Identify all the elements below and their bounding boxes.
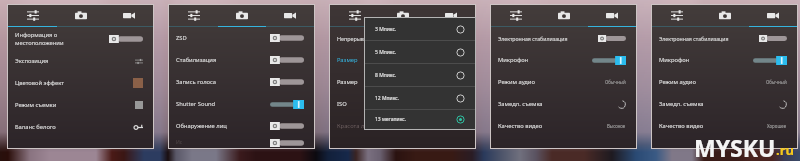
staticText: Shutter Sound — [176, 100, 216, 108]
staticText: MYSKU — [694, 132, 776, 161]
staticText: 8 Мпикс. — [375, 72, 397, 79]
button[interactable]: Качество видео — [491, 115, 636, 137]
button[interactable]: Video — [749, 5, 797, 27]
staticText: Информация о местоположении — [15, 31, 64, 46]
button[interactable]: Обнаружение лиц — [169, 115, 314, 137]
button[interactable]: Режим съемки — [8, 94, 153, 116]
staticText: ZSD — [176, 34, 187, 42]
staticText: Размер — [337, 78, 358, 86]
staticText: Режим съемки — [15, 101, 57, 109]
button[interactable]: Camera — [701, 5, 749, 27]
staticText: Ис — [176, 139, 183, 146]
staticText: Качество видео — [498, 122, 543, 130]
staticText: ISO — [337, 100, 347, 108]
button[interactable]: Camera — [540, 5, 588, 27]
staticText: Обычный — [766, 79, 787, 85]
button[interactable]: Camera — [218, 5, 266, 27]
staticText: По умолчанию — [433, 123, 465, 129]
staticText: 12 Мпикс. — [375, 95, 400, 102]
button[interactable]: ISO — [330, 93, 475, 115]
staticText: Экспозиция — [15, 57, 49, 65]
button[interactable]: Settings — [652, 5, 701, 27]
button[interactable]: 5 Мпикс. — [365, 41, 475, 63]
button[interactable]: 3 Мпикс. — [365, 18, 475, 40]
staticText: Цветовой эффект — [15, 79, 64, 87]
staticText: Стабилизация — [176, 56, 217, 64]
button[interactable]: Замедл. съемка — [652, 93, 797, 115]
button[interactable]: Замедл. съемка — [491, 93, 636, 115]
button[interactable]: Ис — [169, 137, 314, 148]
staticText: Электронная стабилизация — [659, 35, 729, 42]
button[interactable]: Размер — [330, 49, 475, 71]
button[interactable]: 13 мегапикс. — [365, 110, 475, 129]
button[interactable]: Режим аудио — [491, 71, 636, 93]
staticText: .ru — [776, 141, 794, 159]
staticText: Режим аудио — [659, 78, 696, 86]
button[interactable]: Settings — [491, 5, 540, 27]
button[interactable]: 8 Мпикс. — [365, 64, 475, 86]
button[interactable]: Camera — [379, 5, 427, 27]
button[interactable]: Video — [266, 5, 314, 27]
staticText: Замедл. съемка — [659, 100, 704, 108]
staticText: Обычный — [605, 79, 626, 85]
staticText: 13 мегапикс. — [375, 116, 407, 123]
staticText: Хорошее — [767, 123, 787, 129]
staticText: Микрофон — [498, 56, 529, 64]
button[interactable]: Баланс белого — [8, 116, 153, 138]
button[interactable]: Микрофон — [491, 49, 636, 71]
staticText: Непрерывная — [337, 35, 374, 42]
button[interactable]: Электронная стабилизация — [652, 27, 797, 49]
button[interactable]: Camera — [57, 5, 105, 27]
button[interactable]: Video — [105, 5, 153, 27]
staticText: Обнаружение лиц — [176, 122, 227, 130]
button[interactable]: Settings — [169, 5, 218, 27]
staticText: 5 Мпикс. — [375, 49, 397, 56]
button[interactable]: Качество видео — [652, 115, 797, 137]
staticText: Запись голоса — [176, 78, 217, 86]
button[interactable]: Непрерывная — [330, 27, 475, 49]
button[interactable]: Информация о местоположении — [8, 27, 153, 50]
button[interactable]: 12 Мпикс. — [365, 87, 475, 109]
button[interactable]: Размер — [330, 71, 475, 93]
staticText: Высокое — [607, 123, 626, 129]
button[interactable]: Запись голоса — [169, 71, 314, 93]
button[interactable]: Электронная стабилизация — [491, 27, 636, 49]
button[interactable]: Микрофон — [652, 49, 797, 71]
button[interactable]: Цветовой эффект — [8, 72, 153, 94]
staticText: Баланс белого — [15, 123, 56, 131]
button[interactable]: Settings — [330, 5, 379, 27]
staticText: 3 Мпикс. — [375, 26, 397, 33]
button[interactable]: ZSD — [169, 27, 314, 49]
button[interactable]: Экспозиция — [8, 50, 153, 72]
staticText: Режим аудио — [498, 78, 535, 86]
button[interactable]: Video — [427, 5, 475, 27]
button[interactable]: Красота лица — [330, 115, 475, 137]
staticText: Замедл. съемка — [498, 100, 543, 108]
staticText: Микрофон — [659, 56, 690, 64]
staticText: Красота лица — [337, 122, 375, 130]
button[interactable]: Стабилизация — [169, 49, 314, 71]
button[interactable]: Settings — [8, 5, 57, 27]
staticText: Электронная стабилизация — [498, 35, 568, 42]
button[interactable]: Shutter Sound — [169, 93, 314, 115]
staticText: Размер — [337, 56, 358, 64]
staticText: Качество видео — [659, 122, 704, 130]
button[interactable]: Video — [588, 5, 636, 27]
button[interactable]: Режим аудио — [652, 71, 797, 93]
